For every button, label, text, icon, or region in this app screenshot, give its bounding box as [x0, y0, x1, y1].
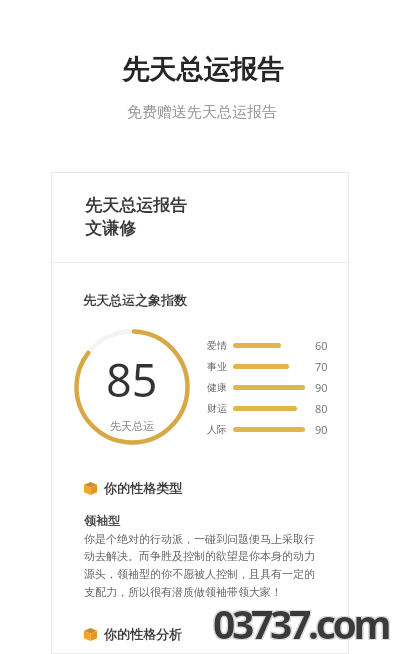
button[interactable]: 健康 — [207, 377, 337, 398]
staticText: 免费赠送先天总运报告 — [2, 103, 400, 122]
staticText: 先天总运报告 — [85, 195, 187, 216]
staticText: 03737.com — [213, 596, 389, 649]
staticText: 文谦修 — [85, 218, 136, 239]
button[interactable]: 你的性格分析 — [84, 626, 182, 642]
button[interactable]: 爱情 — [207, 335, 337, 356]
staticText: 先天总运之象指数 — [83, 292, 187, 308]
staticText: 03737.com — [212, 597, 388, 650]
button[interactable]: 财运 — [207, 398, 337, 419]
staticText: 健康 — [207, 381, 227, 394]
staticText: 你是个绝对的行动派，一碰到问题便马上采取行动去解决。而争胜及控制的欲望是你本身的… — [84, 532, 319, 600]
staticText: 人际 — [207, 423, 227, 436]
staticText: 你的性格类型 — [104, 480, 182, 496]
staticText: 80 — [315, 401, 337, 416]
staticText: 90 — [315, 422, 337, 437]
staticText: 先天总运报告 — [3, 53, 400, 87]
staticText: 财运 — [207, 402, 227, 415]
button[interactable]: 你的性格类型 — [84, 480, 182, 496]
staticText: 03737.com — [212, 596, 388, 649]
staticText: 85 — [106, 349, 158, 410]
staticText: 你的性格分析 — [104, 626, 182, 642]
staticText: 03737.com — [213, 598, 389, 651]
button[interactable]: 人际 — [207, 419, 337, 440]
staticText: 03737.com — [214, 597, 390, 650]
staticText: 70 — [315, 359, 337, 374]
button[interactable]: 事业 — [207, 356, 337, 377]
staticText: 60 — [315, 338, 337, 353]
staticText: 爱情 — [207, 339, 227, 352]
staticText: 03737.com — [212, 598, 388, 651]
staticText: 03737.com — [213, 597, 389, 650]
staticText: 事业 — [207, 360, 227, 373]
staticText: 03737.com — [214, 598, 390, 651]
staticText: 领袖型 — [84, 513, 120, 528]
staticText: 03737.com — [214, 596, 390, 649]
staticText: 90 — [315, 380, 337, 395]
staticText: 先天总运 — [110, 419, 154, 433]
